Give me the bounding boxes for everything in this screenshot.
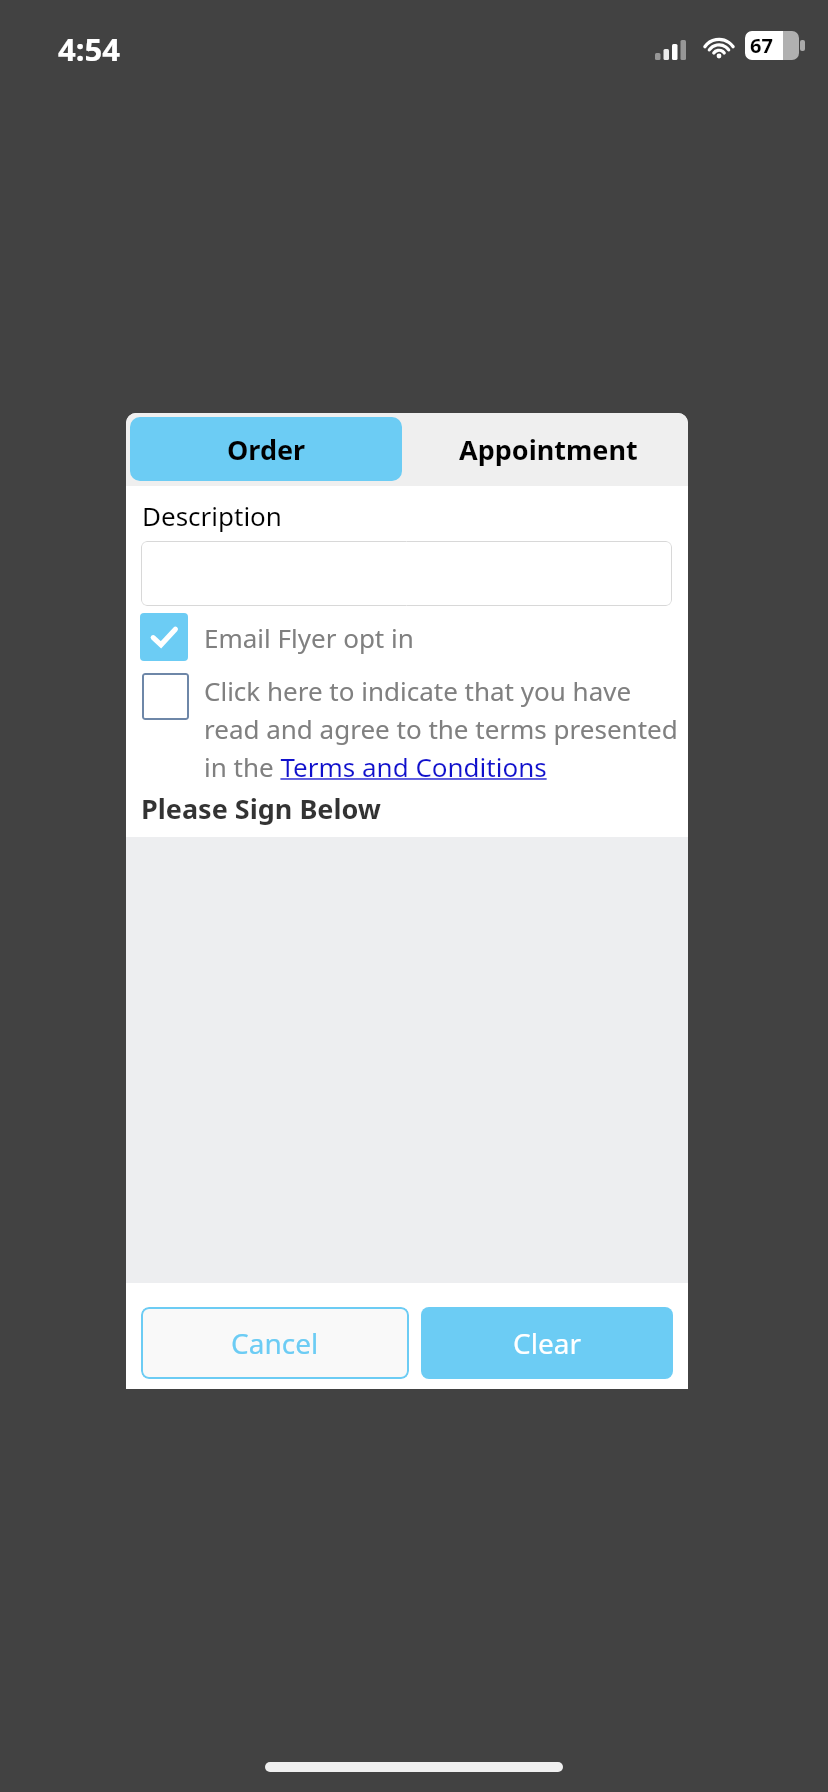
staticText: Cancel <box>231 1324 319 1362</box>
other: Email flyer opt in checked <box>140 613 188 661</box>
button[interactable]: Appointment <box>408 413 688 486</box>
button[interactable]: Order <box>130 417 402 481</box>
staticText: 4:54 <box>58 28 120 70</box>
staticText: Order <box>227 431 306 468</box>
staticText: Click here to indicate that you have rea… <box>204 673 678 784</box>
button[interactable]: Cancel <box>141 1307 409 1379</box>
button[interactable]: Email flyer opt in checked <box>126 613 688 661</box>
staticText: Appointment <box>459 431 638 468</box>
staticText: 67 <box>750 32 773 59</box>
staticText: Description <box>142 498 282 533</box>
button[interactable] <box>141 541 672 606</box>
staticText: Email Flyer opt in <box>204 620 414 655</box>
staticText: Clear <box>513 1324 581 1362</box>
button[interactable]: Agree to terms and conditions, unchecked <box>126 673 688 784</box>
other: Agree to terms and conditions, unchecked <box>142 673 189 720</box>
staticText: Please Sign Below <box>141 790 381 827</box>
button[interactable]: Clear <box>421 1307 673 1379</box>
